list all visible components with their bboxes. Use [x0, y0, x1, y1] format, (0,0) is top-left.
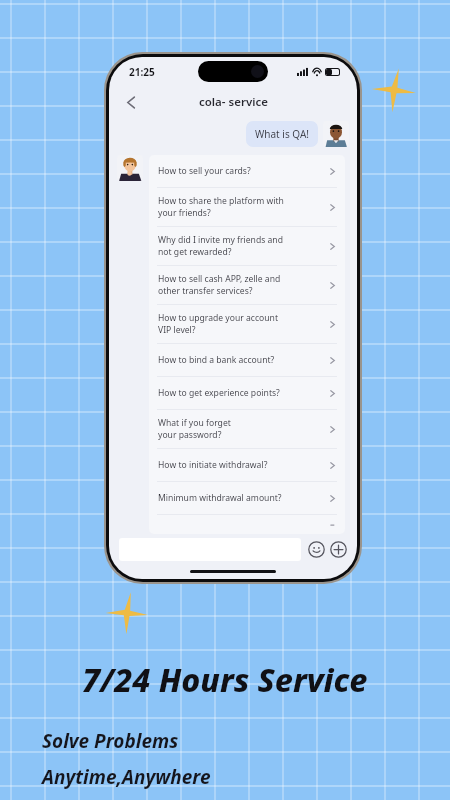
- button[interactable]: How to sell cash APP, zelle and: [149, 266, 345, 304]
- staticText: How to bind a bank account?: [158, 354, 275, 366]
- staticText: Solve Problems: [42, 728, 179, 754]
- staticText: How to get experience points?: [158, 387, 280, 399]
- button[interactable]: Emoji: [308, 541, 325, 558]
- staticText: How to sell cash APP, zelle and: [158, 273, 281, 285]
- button[interactable]: What is QA!: [246, 121, 318, 147]
- staticText: How to share the platform with: [158, 195, 284, 207]
- staticText: How to sell your cards?: [158, 165, 251, 177]
- staticText: What is QA!: [255, 127, 309, 141]
- staticText: your friends?: [158, 207, 211, 219]
- staticText: How to upgrade your account: [158, 312, 279, 324]
- button[interactable]: Why did I invite my friends and: [149, 227, 345, 265]
- staticText: Anytime,Anywhere: [42, 764, 211, 790]
- staticText: your password?: [158, 429, 222, 441]
- button[interactable]: How to initiate withdrawal?: [149, 449, 345, 481]
- button[interactable]: What if you forget: [149, 410, 345, 448]
- staticText: cola- service: [199, 94, 268, 110]
- button[interactable]: How to get experience points?: [149, 377, 345, 409]
- button[interactable]: How to share the platform with: [149, 188, 345, 226]
- staticText: VIP level?: [158, 324, 196, 336]
- staticText: How to initiate withdrawal?: [158, 459, 268, 471]
- button[interactable]: How to sell your cards?: [149, 155, 345, 187]
- button[interactable]: Minimum withdrawal amount?: [149, 482, 345, 514]
- other: star: [106, 592, 148, 634]
- other: star: [372, 68, 416, 112]
- button[interactable]: How to upgrade your account: [149, 305, 345, 343]
- button[interactable]: Add: [330, 541, 347, 558]
- staticText: What if you forget: [158, 417, 231, 429]
- staticText: Why did I invite my friends and: [158, 234, 283, 246]
- staticText: not get rewarded?: [158, 246, 232, 258]
- button[interactable]: Back: [117, 88, 145, 116]
- staticText: 7/24 Hours Service: [82, 658, 368, 702]
- button[interactable]: How to bind a bank account?: [149, 344, 345, 376]
- staticText: Minimum withdrawal amount?: [158, 492, 282, 504]
- staticText: 21:25: [129, 65, 155, 79]
- staticText: other transfer services?: [158, 285, 253, 297]
